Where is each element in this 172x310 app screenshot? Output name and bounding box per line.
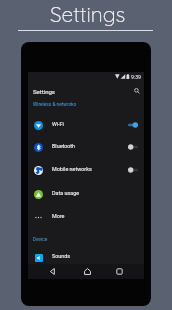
staticText: Settings <box>33 88 55 95</box>
button[interactable]: Bluetooth <box>28 136 144 158</box>
button[interactable]: Wi-Fi <box>28 114 144 136</box>
staticText: Wi-Fi <box>52 121 64 127</box>
staticText: 9:39 <box>131 74 142 80</box>
button[interactable]: Search <box>131 85 143 97</box>
staticText: Wireless & networks <box>33 102 77 108</box>
button[interactable]: Mobile networks <box>28 159 144 181</box>
staticText: Bluetooth <box>52 143 76 149</box>
button[interactable]: Sounds <box>28 246 144 268</box>
staticText: Settings <box>50 1 126 27</box>
button[interactable]: Data usage <box>28 183 144 205</box>
staticText: Data usage <box>52 190 80 196</box>
staticText: More <box>52 213 65 219</box>
button[interactable]: Home <box>80 264 94 279</box>
button[interactable]: Back <box>45 264 59 279</box>
staticText: Sounds <box>52 253 71 259</box>
staticText: Mobile networks <box>52 166 92 172</box>
button[interactable]: More <box>28 206 144 228</box>
button[interactable]: Recents <box>112 264 126 279</box>
staticText: Device <box>33 237 48 243</box>
